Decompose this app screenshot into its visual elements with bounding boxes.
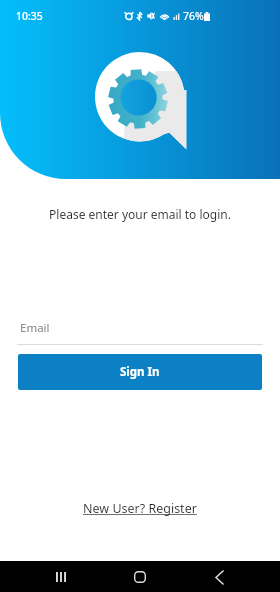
staticText: New User? Register [83, 500, 197, 517]
button[interactable]: New User? Register [79, 498, 201, 519]
staticText: 10:35 [16, 9, 43, 23]
staticText: 76% [183, 9, 204, 23]
button[interactable]: Sign In [18, 354, 262, 390]
button[interactable]: Back [206, 564, 232, 590]
button[interactable]: Home [127, 564, 153, 590]
staticText: Email [20, 320, 50, 336]
button[interactable]: Recent apps [48, 564, 74, 590]
staticText: Sign In [120, 364, 160, 380]
staticText: Please enter your email to login. [0, 206, 280, 222]
